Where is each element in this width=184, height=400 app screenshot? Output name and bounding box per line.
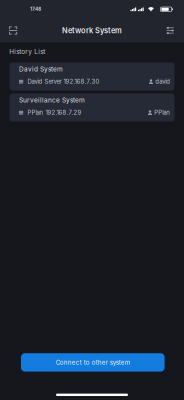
staticText: History List (9, 48, 45, 55)
staticText: Connect to other system (56, 359, 130, 366)
staticText: Network System (62, 26, 122, 35)
staticText: PPlan (154, 109, 170, 116)
button[interactable]: Surveillance System (10, 93, 174, 121)
staticText: David System (19, 65, 63, 73)
button[interactable]: Filter (162, 22, 179, 39)
button[interactable]: Connect to other system (21, 353, 165, 372)
staticText: PPlan 192.168.7.29 (27, 109, 81, 116)
staticText: 17:48 (30, 7, 41, 12)
staticText: david (155, 78, 170, 85)
button[interactable]: David System (10, 62, 174, 90)
staticText: Surveillance System (19, 96, 85, 104)
staticText: David Server 192.168.7.30 (27, 78, 99, 85)
button[interactable]: Scan code (5, 22, 22, 39)
